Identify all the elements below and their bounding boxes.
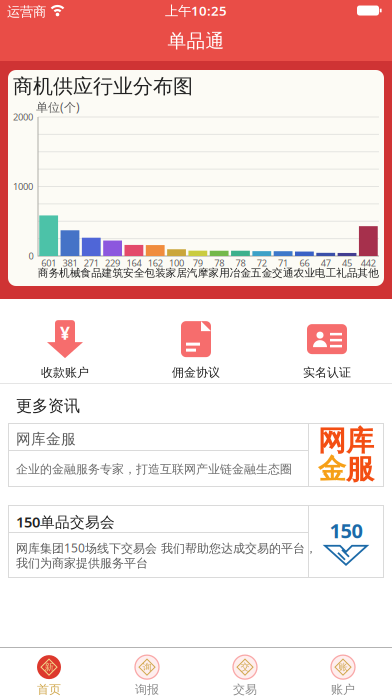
staticText: 佣金协议 [172, 365, 220, 380]
staticText: 1000 [13, 180, 33, 193]
staticText: 164 [126, 257, 141, 269]
staticText: 单品通 [167, 29, 224, 52]
staticText: 271 [84, 257, 99, 269]
staticText: 礼品 [336, 266, 358, 279]
staticText: 47 [321, 257, 331, 269]
staticText: 冶金 [229, 266, 251, 279]
staticText: 72 [257, 257, 267, 269]
staticText: 71 [278, 257, 288, 269]
staticText: 商务 [38, 266, 60, 279]
staticText: 其他 [357, 266, 379, 279]
staticText: 100 [169, 257, 184, 269]
staticText: 食品 [80, 266, 102, 279]
staticText: 询 [142, 661, 151, 673]
staticText: 网库集团150场线下交易会 我们帮助您达成交易的平台， [16, 540, 317, 556]
staticText: 上午10:25 [165, 2, 227, 19]
staticText: 601 [41, 257, 56, 269]
staticText: 2000 [13, 111, 33, 123]
staticText: 商机供应行业分布图 [13, 74, 193, 99]
staticText: 建筑 [102, 266, 124, 279]
staticText: 包装 [144, 266, 166, 279]
staticText: 首页 [37, 682, 61, 696]
staticText: 162 [148, 257, 163, 269]
button[interactable]: 网库金服 [8, 423, 384, 487]
staticText: 单位(个) [36, 99, 80, 115]
staticText: 家用 [208, 266, 230, 279]
staticText: 网库金服 [16, 430, 76, 448]
staticText: 交易 [233, 682, 257, 696]
staticText: 企业的金融服务专家，打造互联网产业链金融生态圈 [16, 462, 292, 477]
staticText: 0 [28, 250, 33, 262]
button[interactable]: 账 [308, 654, 378, 696]
staticText: 实名认证 [303, 365, 351, 380]
staticText: 家居 [165, 266, 187, 279]
staticText: 381 [62, 257, 77, 269]
staticText: 账户 [331, 682, 355, 696]
staticText: 服 [346, 452, 374, 486]
staticText: 安全 [123, 266, 145, 279]
staticText: 150 [329, 517, 362, 544]
staticText: 运营商 [7, 3, 46, 20]
staticText: 汽摩 [187, 266, 209, 279]
staticText: 我们为商家提供服务平台 [16, 556, 148, 571]
button[interactable]: 150单品交易会 [8, 505, 384, 578]
staticText: 五金 [251, 266, 273, 279]
staticText: 询报 [135, 682, 159, 696]
staticText: 金 [318, 452, 346, 486]
staticText: 229 [105, 257, 120, 269]
staticText: 收款账户 [41, 365, 89, 380]
staticText: 农业 [293, 266, 315, 279]
button[interactable]: 新 [14, 654, 84, 696]
staticText: 更多资讯 [16, 396, 80, 416]
button[interactable]: ¥ [10, 315, 120, 385]
staticText: 交 [240, 661, 249, 673]
staticText: 442 [361, 257, 376, 269]
staticText: ¥ [60, 322, 70, 345]
staticText: 45 [342, 257, 352, 269]
staticText: 66 [299, 257, 309, 269]
staticText: 78 [214, 257, 224, 269]
staticText: 网库 [318, 424, 374, 458]
staticText: 150单品交易会 [16, 512, 115, 531]
button[interactable]: 佣金协议 [141, 315, 251, 385]
staticText: 交通 [272, 266, 294, 279]
staticText: 78 [235, 257, 245, 269]
staticText: 账 [338, 661, 347, 673]
button[interactable]: 实名认证 [272, 315, 382, 385]
button[interactable]: 询 [112, 654, 182, 696]
staticText: 79 [193, 257, 203, 269]
staticText: 机械 [59, 266, 81, 279]
button[interactable]: 交 [210, 654, 280, 696]
staticText: 电工 [315, 266, 337, 279]
staticText: 新 [44, 661, 53, 673]
